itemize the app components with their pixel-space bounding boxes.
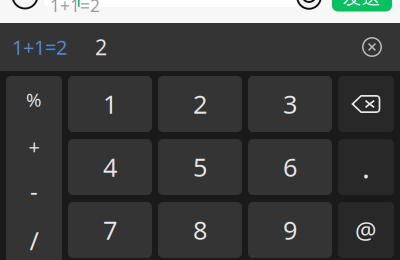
- staticText: 3: [283, 87, 297, 121]
- staticText: @: [355, 214, 377, 246]
- staticText: /: [29, 224, 38, 257]
- staticText: 1: [103, 87, 117, 121]
- staticText: 发送: [343, 0, 381, 9]
- staticText: 8: [193, 213, 207, 247]
- button[interactable]: Dismiss: [362, 37, 400, 57]
- button[interactable]: 5: [158, 139, 242, 195]
- button[interactable]: 发送: [332, 0, 392, 11]
- button[interactable]: 9: [248, 202, 332, 258]
- staticText: 4: [103, 150, 117, 184]
- staticText: 6: [283, 150, 297, 184]
- button[interactable]: At sign: [338, 202, 394, 258]
- button[interactable]: 8: [158, 202, 242, 258]
- button[interactable]: Voice message: [10, 0, 40, 11]
- button[interactable]: Decimal point: [338, 139, 394, 195]
- button[interactable]: +: [6, 123, 62, 170]
- button[interactable]: Emoji: [294, 0, 324, 12]
- staticText: 2: [95, 33, 107, 61]
- button[interactable]: 3: [248, 76, 332, 132]
- staticText: 5: [193, 150, 207, 184]
- staticText: .: [362, 147, 370, 186]
- button[interactable]: %: [6, 76, 62, 123]
- staticText: 1+1=2: [12, 34, 67, 60]
- button[interactable]: Delete: [338, 76, 394, 132]
- button[interactable]: 6: [248, 139, 332, 195]
- button[interactable]: 1: [68, 76, 152, 132]
- button[interactable]: 1+1=2: [12, 34, 67, 60]
- staticText: 7: [103, 213, 117, 247]
- staticText: 1+1=2: [50, 0, 100, 17]
- staticText: %: [26, 87, 42, 112]
- button[interactable]: 2: [158, 76, 242, 132]
- staticText: 9: [283, 213, 297, 247]
- staticText: 2: [193, 87, 207, 121]
- button[interactable]: 2: [95, 33, 107, 61]
- staticText: +: [28, 133, 39, 160]
- staticText: -: [30, 175, 38, 206]
- button[interactable]: -: [6, 167, 62, 214]
- button[interactable]: 7: [68, 202, 152, 258]
- button[interactable]: 4: [68, 139, 152, 195]
- button[interactable]: /: [6, 217, 62, 260]
